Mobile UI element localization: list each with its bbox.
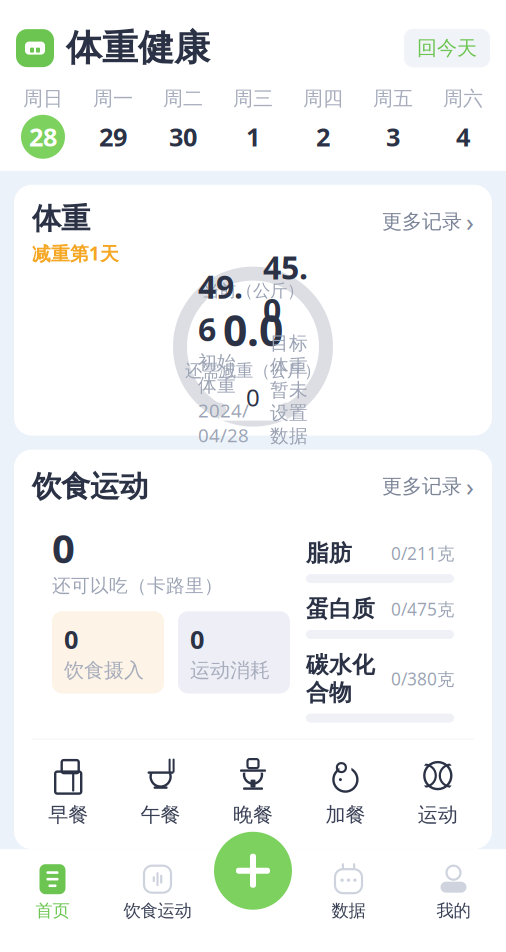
staticText: 周一 — [93, 86, 133, 111]
button[interactable]: 1 — [218, 113, 288, 161]
staticText: 饮食运动 — [123, 900, 191, 921]
staticText: 周四 — [303, 86, 343, 111]
staticText: 晚餐 — [233, 803, 273, 827]
button[interactable]: 4 — [428, 113, 498, 161]
staticText: 2024/04/28 — [198, 398, 249, 447]
button[interactable]: 晚餐 — [207, 754, 299, 831]
staticText: 周二 — [163, 86, 203, 111]
staticText: 首页 — [35, 900, 69, 921]
button[interactable]: 午餐 — [114, 754, 207, 831]
staticText: 0/211克 — [391, 542, 454, 565]
staticText: 还需减重（公斤） — [185, 360, 321, 381]
staticText: 0 — [190, 622, 204, 656]
staticText: 当前（公斤） — [202, 280, 304, 301]
staticText: 0 — [64, 622, 78, 656]
staticText: 早餐 — [48, 803, 88, 827]
button[interactable]: 早餐 — [22, 754, 114, 831]
staticText: 更多记录 — [382, 209, 462, 234]
staticText: 加餐 — [325, 803, 365, 827]
staticText: 更多记录 — [382, 474, 462, 499]
staticText: 0/380克 — [391, 667, 454, 690]
button[interactable]: 28 — [8, 113, 78, 161]
button[interactable]: 更多记录 — [372, 201, 474, 242]
staticText: 碳水化合物 — [306, 651, 375, 707]
staticText: 我的 — [436, 900, 470, 921]
staticText: 29 — [99, 120, 127, 154]
staticText: 蛋白质 — [306, 595, 375, 623]
staticText: 4 — [456, 120, 470, 154]
staticText: 2 — [316, 120, 330, 154]
staticText: 28 — [29, 120, 57, 154]
staticText: 周六 — [443, 86, 483, 111]
button[interactable]: 更多记录 — [372, 466, 474, 507]
staticText: 49.6 — [198, 265, 243, 350]
staticText: 30 — [169, 120, 197, 154]
staticText: 脂肪 — [306, 539, 352, 567]
staticText: 运动 — [418, 803, 458, 827]
staticText: 初始体重 — [198, 351, 236, 397]
staticText: 0.0 — [223, 301, 283, 358]
button[interactable]: 加餐 — [299, 754, 392, 831]
button[interactable]: 2 — [288, 113, 358, 161]
staticText: 3 — [386, 120, 400, 154]
staticText: 周三 — [233, 86, 273, 111]
button[interactable]: 我的 — [401, 859, 506, 925]
button[interactable]: 饮食运动 — [105, 859, 210, 925]
staticText: 目标体重 — [270, 332, 308, 378]
staticText: 数据 — [331, 900, 365, 921]
staticText: › — [466, 205, 474, 238]
staticText: 饮食摄入 — [64, 658, 144, 682]
staticText: 0 — [246, 381, 260, 413]
button[interactable]: 运动 — [392, 754, 484, 831]
staticText: 周五 — [373, 86, 413, 111]
staticText: 运动消耗 — [190, 658, 270, 682]
button[interactable]: Add record — [214, 832, 292, 910]
staticText: 1 — [246, 120, 260, 154]
staticText: 午餐 — [141, 803, 181, 827]
button[interactable]: 3 — [358, 113, 428, 161]
staticText: 体重健康 — [66, 26, 210, 70]
button[interactable]: 回今天 — [404, 29, 490, 67]
staticText: 45.0 — [263, 246, 308, 331]
button[interactable]: 首页 — [0, 859, 105, 925]
staticText: 体重 — [32, 201, 90, 237]
staticText: 回今天 — [417, 36, 477, 60]
staticText: › — [466, 470, 474, 503]
staticText: 还可以吃（卡路里） — [52, 574, 223, 597]
button[interactable]: 29 — [78, 113, 148, 161]
staticText: 0/475克 — [391, 597, 454, 620]
button[interactable]: 数据 — [296, 859, 401, 925]
staticText: 周日 — [23, 86, 63, 111]
staticText: 减重第1天 — [32, 241, 119, 266]
staticText: 饮食运动 — [32, 468, 148, 504]
button[interactable]: 30 — [148, 113, 218, 161]
staticText: 暂未设置数据 — [270, 379, 308, 447]
staticText: 0 — [52, 521, 75, 574]
